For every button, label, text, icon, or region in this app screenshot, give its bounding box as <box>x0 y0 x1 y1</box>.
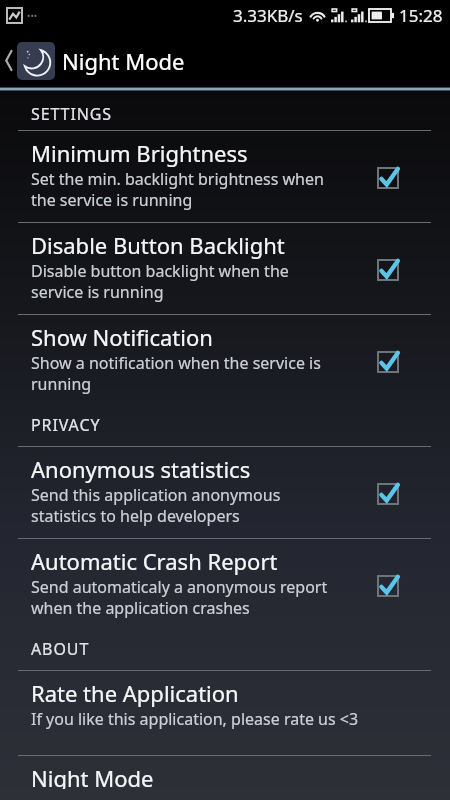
staticText: Show a notification when the service is … <box>31 352 321 395</box>
staticText: Disable Button Backlight <box>31 230 285 260</box>
button[interactable]: Toggle <box>374 348 402 376</box>
button[interactable]: Minimum Brightness <box>0 131 450 222</box>
button[interactable]: Show Notification <box>0 315 450 406</box>
staticText: Minimum Brightness <box>31 138 248 168</box>
staticText: Set the min. backlight brightness when t… <box>31 168 324 211</box>
staticText: If you like this application, please rat… <box>31 708 359 730</box>
staticText: Night Mode <box>62 46 185 76</box>
staticText: Night Mode <box>31 763 154 789</box>
staticText: SETTINGS <box>31 103 113 125</box>
staticText: 15:28 <box>399 4 443 27</box>
staticText: Anonymous statistics <box>31 454 251 484</box>
button[interactable]: Toggle <box>374 256 402 284</box>
button[interactable]: Disable Button Backlight <box>0 223 450 314</box>
staticText: Automatic Crash Report <box>31 546 278 576</box>
staticText: ABOUT <box>31 638 90 660</box>
button[interactable]: Automatic Crash Report <box>0 539 450 630</box>
staticText: Send automaticaly a anonymous report whe… <box>31 576 328 619</box>
button[interactable]: Toggle <box>374 164 402 192</box>
button[interactable]: Rate the Application <box>0 671 450 755</box>
button[interactable]: Back <box>0 34 16 87</box>
button[interactable]: Anonymous statistics <box>0 447 450 538</box>
staticText: Show Notification <box>31 322 213 352</box>
staticText: PRIVACY <box>31 414 101 436</box>
button[interactable]: Toggle <box>374 572 402 600</box>
staticText: Rate the Application <box>31 678 239 708</box>
staticText: Disable button backlight when the servic… <box>31 260 289 303</box>
button[interactable]: Night Mode <box>0 756 450 800</box>
staticText: Send this application anonymous statisti… <box>31 484 281 527</box>
staticText: 3.33KB/s <box>233 4 303 27</box>
staticText: ••• <box>27 9 38 21</box>
button[interactable]: Toggle <box>374 480 402 508</box>
